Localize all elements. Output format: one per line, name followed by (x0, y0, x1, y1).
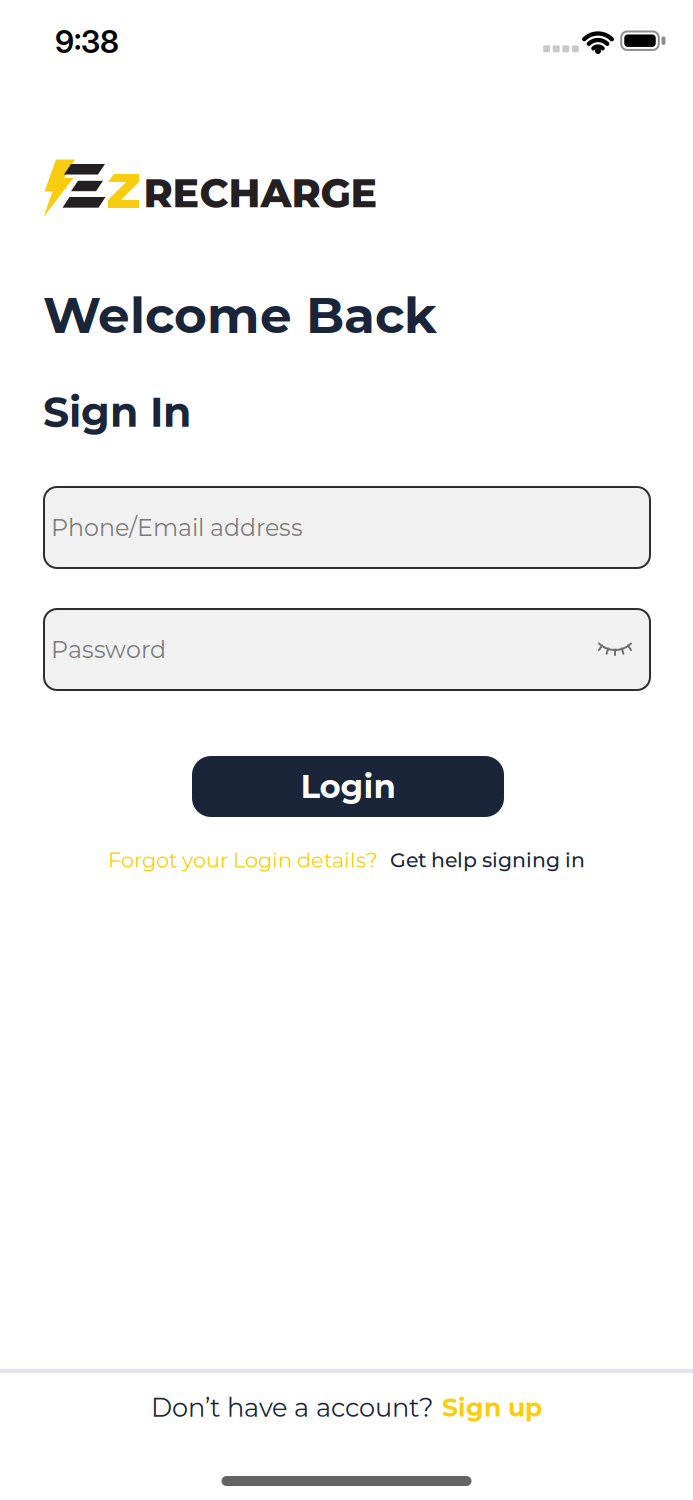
staticText: Phone/Email address (51, 513, 303, 542)
button[interactable]: Get help signing in (390, 848, 585, 872)
staticText: Login (300, 767, 395, 806)
staticText: Get help signing in (390, 848, 585, 872)
button[interactable]: Don’t have a account? (151, 1392, 542, 1423)
staticText: RECHARGE (143, 169, 377, 217)
button[interactable]: Password (43, 608, 651, 691)
staticText: Welcome Back (43, 284, 437, 345)
button[interactable]: Login (192, 756, 504, 817)
button[interactable]: Phone/Email address (43, 486, 651, 569)
staticText: 9:38 (55, 22, 119, 60)
staticText: Don’t have a account? (151, 1392, 434, 1423)
staticText: Forgot your Login details? (108, 847, 378, 873)
button[interactable]: Forgot your Login details? (108, 847, 378, 873)
staticText: Password (51, 635, 166, 664)
staticText: Sign up (442, 1392, 542, 1423)
staticText: Sign In (43, 387, 191, 437)
